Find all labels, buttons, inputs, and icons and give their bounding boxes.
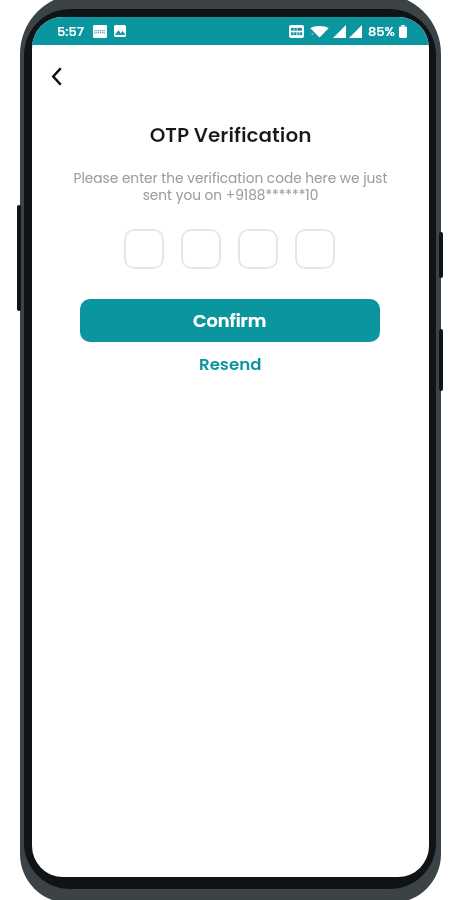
staticText: OTP Verification xyxy=(32,121,429,149)
button[interactable] xyxy=(181,229,221,269)
button[interactable]: Resend xyxy=(189,350,272,379)
button[interactable] xyxy=(124,229,164,269)
button[interactable] xyxy=(295,229,335,269)
staticText: Please enter the verification code here … xyxy=(32,169,429,205)
button[interactable]: Confirm xyxy=(80,299,380,342)
staticText: 85% xyxy=(368,22,395,40)
button[interactable]: Back xyxy=(35,54,79,98)
staticText: 5:57 xyxy=(57,22,85,40)
staticText: Confirm xyxy=(193,308,267,333)
button[interactable] xyxy=(238,229,278,269)
staticText: Resend xyxy=(199,353,262,376)
